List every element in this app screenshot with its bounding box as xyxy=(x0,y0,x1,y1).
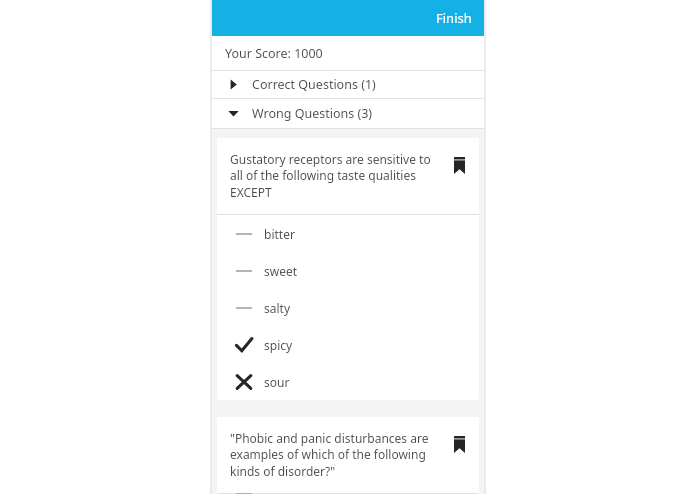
staticText: sweet xyxy=(264,263,298,279)
staticText: Your Score: 1000 xyxy=(225,45,323,62)
staticText: "Phobic and panic disturbances are examp… xyxy=(230,430,441,480)
button[interactable]: sour xyxy=(217,363,479,400)
button[interactable]: Wrong Questions (3) xyxy=(212,99,484,128)
button[interactable]: Correct Questions (1) xyxy=(212,71,484,98)
staticText: Correct Questions (1) xyxy=(252,76,376,93)
staticText: sour xyxy=(264,374,290,390)
button[interactable]: spicy xyxy=(217,326,479,363)
button[interactable]: sweet xyxy=(217,252,479,289)
button[interactable]: Gustatory receptors are sensitive to all… xyxy=(217,138,479,400)
staticText: Finish xyxy=(436,9,472,27)
button[interactable]: bitter xyxy=(217,215,479,252)
button[interactable]: Your Score: 1000 xyxy=(212,36,484,70)
staticText: bitter xyxy=(264,226,295,242)
staticText: Gustatory receptors are sensitive to all… xyxy=(230,151,441,201)
staticText: spicy xyxy=(264,337,293,353)
button[interactable]: Bookmark question xyxy=(447,153,471,177)
button[interactable]: Finish xyxy=(424,3,484,33)
button[interactable]: Bookmark question xyxy=(447,432,471,456)
staticText: salty xyxy=(264,300,291,316)
staticText: Wrong Questions (3) xyxy=(252,105,373,122)
button[interactable]: salty xyxy=(217,289,479,326)
button[interactable]: "Phobic and panic disturbances are examp… xyxy=(217,417,479,494)
